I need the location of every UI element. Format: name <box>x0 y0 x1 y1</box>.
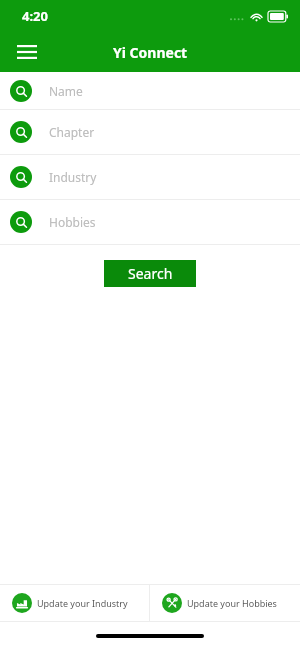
button[interactable]: Chapter <box>0 110 300 154</box>
staticText: Name <box>49 83 83 99</box>
staticText: Update your Industry <box>37 597 128 609</box>
button[interactable]: Update your Industry <box>0 585 149 621</box>
staticText: Search <box>128 264 173 283</box>
staticText: Chapter <box>49 124 95 140</box>
staticText: 4:20 <box>22 7 48 25</box>
staticText: Hobbies <box>49 214 96 230</box>
button[interactable]: Industry <box>0 155 300 199</box>
staticText: Yi Connect <box>113 43 188 62</box>
button[interactable]: Name <box>0 72 300 109</box>
button[interactable]: Update your Hobbies <box>150 585 300 621</box>
button[interactable]: Search <box>104 260 196 287</box>
button[interactable]: Open navigation menu <box>10 35 44 69</box>
staticText: Update your Hobbies <box>187 597 277 609</box>
button[interactable]: Hobbies <box>0 200 300 244</box>
staticText: Industry <box>49 169 97 185</box>
